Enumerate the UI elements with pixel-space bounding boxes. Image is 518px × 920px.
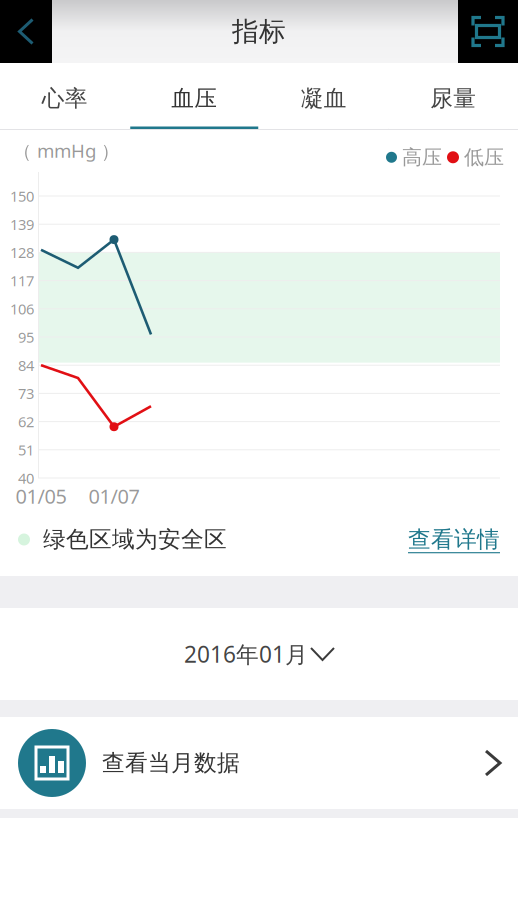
button[interactable]: 返回 [0, 0, 52, 63]
staticText: 心率 [42, 84, 88, 112]
button[interactable]: 2016年01月 [0, 608, 518, 700]
button[interactable]: 心率 [0, 63, 129, 129]
staticText: 150 [10, 186, 34, 206]
staticText: 查看当月数据 [102, 749, 240, 777]
staticText: 血压 [171, 84, 217, 112]
staticText: 2016年01月 [184, 639, 308, 669]
staticText: 指标 [232, 15, 286, 48]
staticText: 01/07 [88, 483, 139, 509]
staticText: 106 [10, 299, 34, 319]
button[interactable]: 尿量 [388, 63, 518, 129]
staticText: 117 [10, 271, 34, 290]
staticText: 尿量 [430, 84, 476, 112]
staticText: 凝血 [301, 84, 347, 112]
staticText: 73 [18, 384, 34, 403]
button[interactable]: 查看详情 [408, 518, 500, 561]
staticText: 84 [18, 355, 34, 375]
staticText: 51 [18, 440, 34, 460]
button[interactable]: 凝血 [259, 63, 388, 129]
staticText: （ mmHg ） [13, 138, 120, 163]
staticText: 95 [18, 327, 34, 347]
button[interactable]: 血压 [129, 63, 259, 129]
staticText: 查看详情 [408, 526, 500, 553]
button[interactable]: 扫描 [458, 0, 518, 63]
staticText: 01/05 [15, 483, 66, 509]
staticText: 绿色区域为安全区 [43, 526, 227, 553]
staticText: 62 [18, 412, 34, 431]
staticText: 139 [10, 214, 34, 234]
staticText: 128 [10, 243, 34, 262]
staticText: 40 [18, 468, 34, 488]
button[interactable]: 查看当月数据 [0, 717, 518, 809]
staticText: 低压 [464, 145, 504, 170]
staticText: 高压 [402, 145, 442, 170]
